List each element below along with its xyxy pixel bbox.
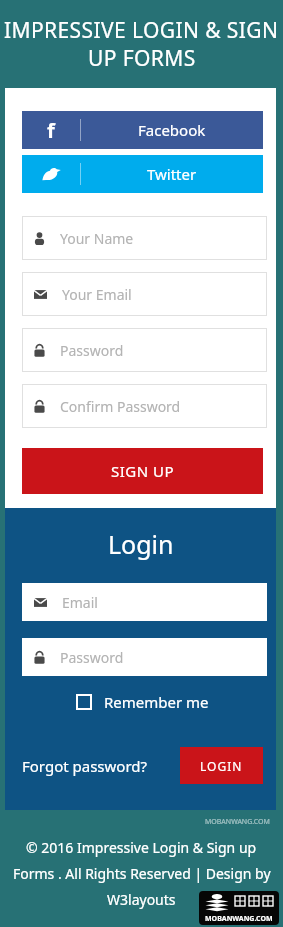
button[interactable]: f xyxy=(22,111,263,149)
staticText: UP FORMS xyxy=(88,44,196,72)
button[interactable]: Password xyxy=(22,638,267,676)
staticText: Confirm Password xyxy=(60,397,181,416)
staticText: MOBANWANG.COM xyxy=(205,817,270,827)
staticText: Your Email xyxy=(62,285,132,304)
button[interactable]: Forgot password? xyxy=(22,756,148,776)
button[interactable]: LOGIN xyxy=(180,747,263,784)
staticText: Forms . All Rights Reserved | Design by xyxy=(13,864,271,883)
button[interactable]: Email xyxy=(22,583,267,621)
staticText: SIGN UP xyxy=(111,461,175,481)
staticText: W3layouts xyxy=(107,890,176,909)
button[interactable]: Confirm Password xyxy=(22,384,267,428)
button[interactable]: Your Email xyxy=(22,272,267,316)
staticText: f xyxy=(47,117,55,144)
staticText: LOGIN xyxy=(200,758,243,774)
staticText: Password xyxy=(60,341,124,360)
staticText: Password xyxy=(60,648,124,667)
staticText: Facebook xyxy=(138,120,206,140)
button[interactable]: MOBANWANG.COM xyxy=(199,891,279,925)
staticText: © 2016 Impressive Login & Sign up xyxy=(26,838,257,857)
button[interactable]: Your Name xyxy=(22,216,267,260)
staticText: Remember me xyxy=(104,692,209,712)
button[interactable]: Remember me xyxy=(22,692,263,712)
staticText: MOBANWANG.COM xyxy=(205,914,273,924)
button[interactable]: Twitter xyxy=(22,155,263,193)
button[interactable]: SIGN UP xyxy=(22,448,263,494)
staticText: Email xyxy=(62,593,98,612)
button[interactable]: Password xyxy=(22,328,267,372)
staticText: Login xyxy=(108,527,174,561)
staticText: Twitter xyxy=(147,164,197,184)
staticText: IMPRESSIVE LOGIN & SIGN xyxy=(4,16,279,44)
staticText: Your Name xyxy=(60,229,134,248)
